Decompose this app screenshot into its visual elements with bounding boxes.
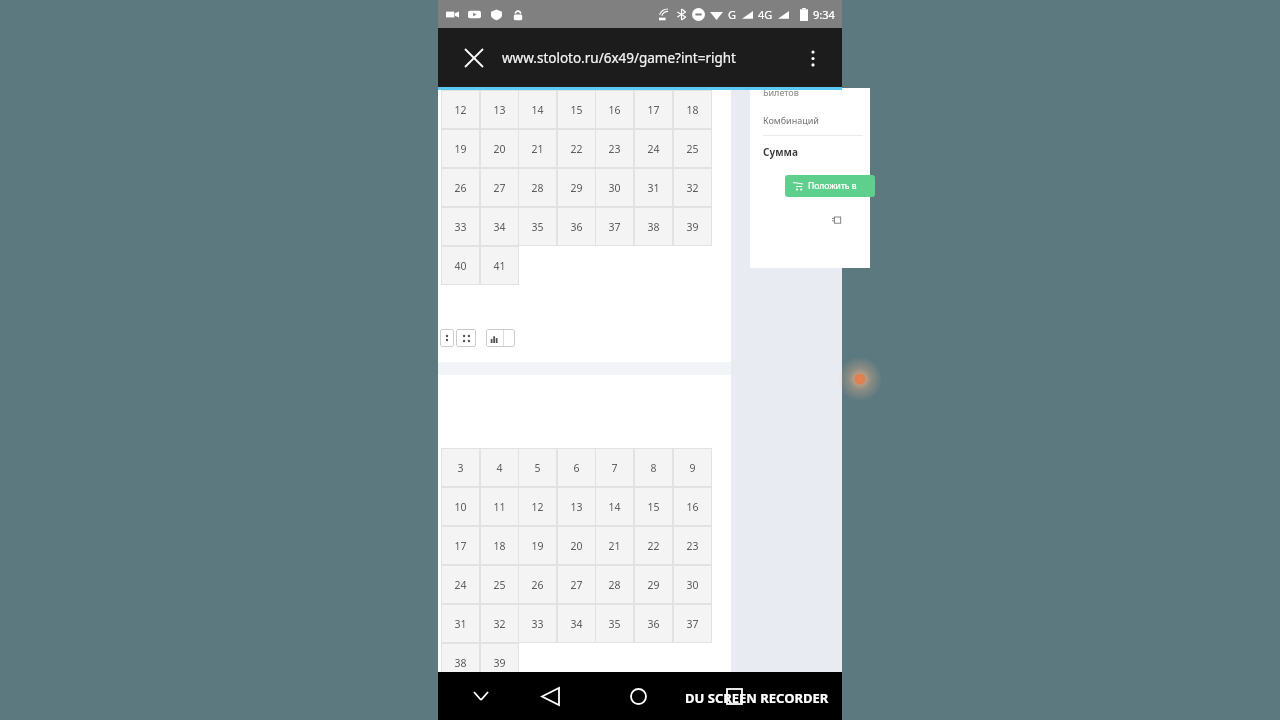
button[interactable]: 17 xyxy=(634,90,673,129)
button[interactable]: 14 xyxy=(595,487,634,526)
staticText: 34 xyxy=(570,617,583,631)
button[interactable]: Home xyxy=(618,676,658,716)
button[interactable]: 36 xyxy=(557,207,596,246)
button[interactable]: 4 xyxy=(480,448,519,487)
button[interactable]: 22 xyxy=(557,129,596,168)
staticText: 18 xyxy=(493,539,506,553)
button[interactable]: 30 xyxy=(673,565,712,604)
button[interactable]: 38 xyxy=(634,207,673,246)
button[interactable]: 36 xyxy=(634,604,673,643)
button[interactable]: 23 xyxy=(595,129,634,168)
button[interactable]: 22 xyxy=(634,526,673,565)
staticText: 36 xyxy=(570,220,583,234)
button[interactable]: 37 xyxy=(595,207,634,246)
button[interactable]: 8 xyxy=(634,448,673,487)
button[interactable]: 28 xyxy=(518,168,557,207)
button[interactable]: 30 xyxy=(595,168,634,207)
button[interactable]: Положить в xyxy=(785,175,875,197)
staticText: 16 xyxy=(686,500,699,514)
button[interactable]: 16 xyxy=(595,90,634,129)
staticText: 24 xyxy=(647,142,660,156)
button[interactable]: 10 xyxy=(441,487,480,526)
staticText: 5 xyxy=(534,461,541,475)
button[interactable]: Basket xyxy=(829,211,845,227)
button[interactable]: 39 xyxy=(480,643,519,682)
button[interactable]: 33 xyxy=(518,604,557,643)
button[interactable]: 21 xyxy=(595,526,634,565)
button[interactable]: 26 xyxy=(518,565,557,604)
button[interactable]: 12 xyxy=(441,90,480,129)
staticText: 20 xyxy=(493,142,506,156)
button[interactable]: 28 xyxy=(595,565,634,604)
button[interactable]: 35 xyxy=(518,207,557,246)
button[interactable]: 14 xyxy=(518,90,557,129)
staticText: 34 xyxy=(493,220,506,234)
button[interactable]: 18 xyxy=(673,90,712,129)
button[interactable]: 31 xyxy=(634,168,673,207)
button[interactable]: 25 xyxy=(673,129,712,168)
button[interactable]: 32 xyxy=(673,168,712,207)
button[interactable]: 31 xyxy=(441,604,480,643)
button[interactable]: 27 xyxy=(480,168,519,207)
button[interactable]: 34 xyxy=(480,207,519,246)
button[interactable]: 13 xyxy=(557,487,596,526)
button[interactable]: 19 xyxy=(441,129,480,168)
button[interactable]: Recent apps xyxy=(714,676,754,716)
button[interactable]: 26 xyxy=(441,168,480,207)
button[interactable]: Random one xyxy=(440,329,454,347)
button[interactable]: 3 xyxy=(441,448,480,487)
button[interactable]: 35 xyxy=(595,604,634,643)
button[interactable]: Back xyxy=(530,676,570,716)
button[interactable]: 21 xyxy=(518,129,557,168)
staticText: 33 xyxy=(454,220,467,234)
button[interactable]: 29 xyxy=(557,168,596,207)
staticText: 21 xyxy=(531,142,544,156)
button[interactable]: 32 xyxy=(480,604,519,643)
button[interactable]: 20 xyxy=(480,129,519,168)
button[interactable]: 20 xyxy=(557,526,596,565)
button[interactable]: 15 xyxy=(557,90,596,129)
button[interactable]: 27 xyxy=(557,565,596,604)
button[interactable]: www.stoloto.ru/6x49/game?int=right xyxy=(502,38,752,78)
staticText: 3 xyxy=(457,461,464,475)
staticText: 14 xyxy=(531,103,544,117)
staticText: 16 xyxy=(608,103,621,117)
button[interactable]: 34 xyxy=(557,604,596,643)
button[interactable]: 33 xyxy=(441,207,480,246)
staticText: 30 xyxy=(608,181,621,195)
button[interactable]: 39 xyxy=(673,207,712,246)
button[interactable]: 17 xyxy=(441,526,480,565)
button[interactable]: 15 xyxy=(634,487,673,526)
button[interactable]: More options xyxy=(796,41,830,75)
button[interactable]: 13 xyxy=(480,90,519,129)
button[interactable]: 41 xyxy=(480,246,519,285)
button[interactable]: Close xyxy=(456,40,492,76)
staticText: 4 xyxy=(496,461,503,475)
button[interactable]: 40 xyxy=(441,246,480,285)
staticText: 25 xyxy=(686,142,699,156)
button[interactable]: 19 xyxy=(518,526,557,565)
button[interactable]: 38 xyxy=(441,643,480,682)
button[interactable]: 24 xyxy=(441,565,480,604)
button[interactable]: 12 xyxy=(518,487,557,526)
button[interactable]: 11 xyxy=(480,487,519,526)
button[interactable]: 5 xyxy=(518,448,557,487)
staticText: 36 xyxy=(647,617,660,631)
button[interactable]: Random many xyxy=(456,329,476,347)
staticText: 11 xyxy=(493,500,506,514)
button[interactable]: 9 xyxy=(673,448,712,487)
button[interactable]: Hide xyxy=(464,679,498,713)
button[interactable]: 18 xyxy=(480,526,519,565)
staticText: 28 xyxy=(531,181,544,195)
button[interactable]: 29 xyxy=(634,565,673,604)
button[interactable]: 16 xyxy=(673,487,712,526)
staticText: Положить в xyxy=(808,180,857,192)
button[interactable]: Statistics xyxy=(486,329,515,347)
button[interactable]: 7 xyxy=(595,448,634,487)
button[interactable]: 25 xyxy=(480,565,519,604)
button[interactable]: 37 xyxy=(673,604,712,643)
staticText: 39 xyxy=(493,656,506,670)
button[interactable]: 24 xyxy=(634,129,673,168)
button[interactable]: 6 xyxy=(557,448,596,487)
button[interactable]: 23 xyxy=(673,526,712,565)
